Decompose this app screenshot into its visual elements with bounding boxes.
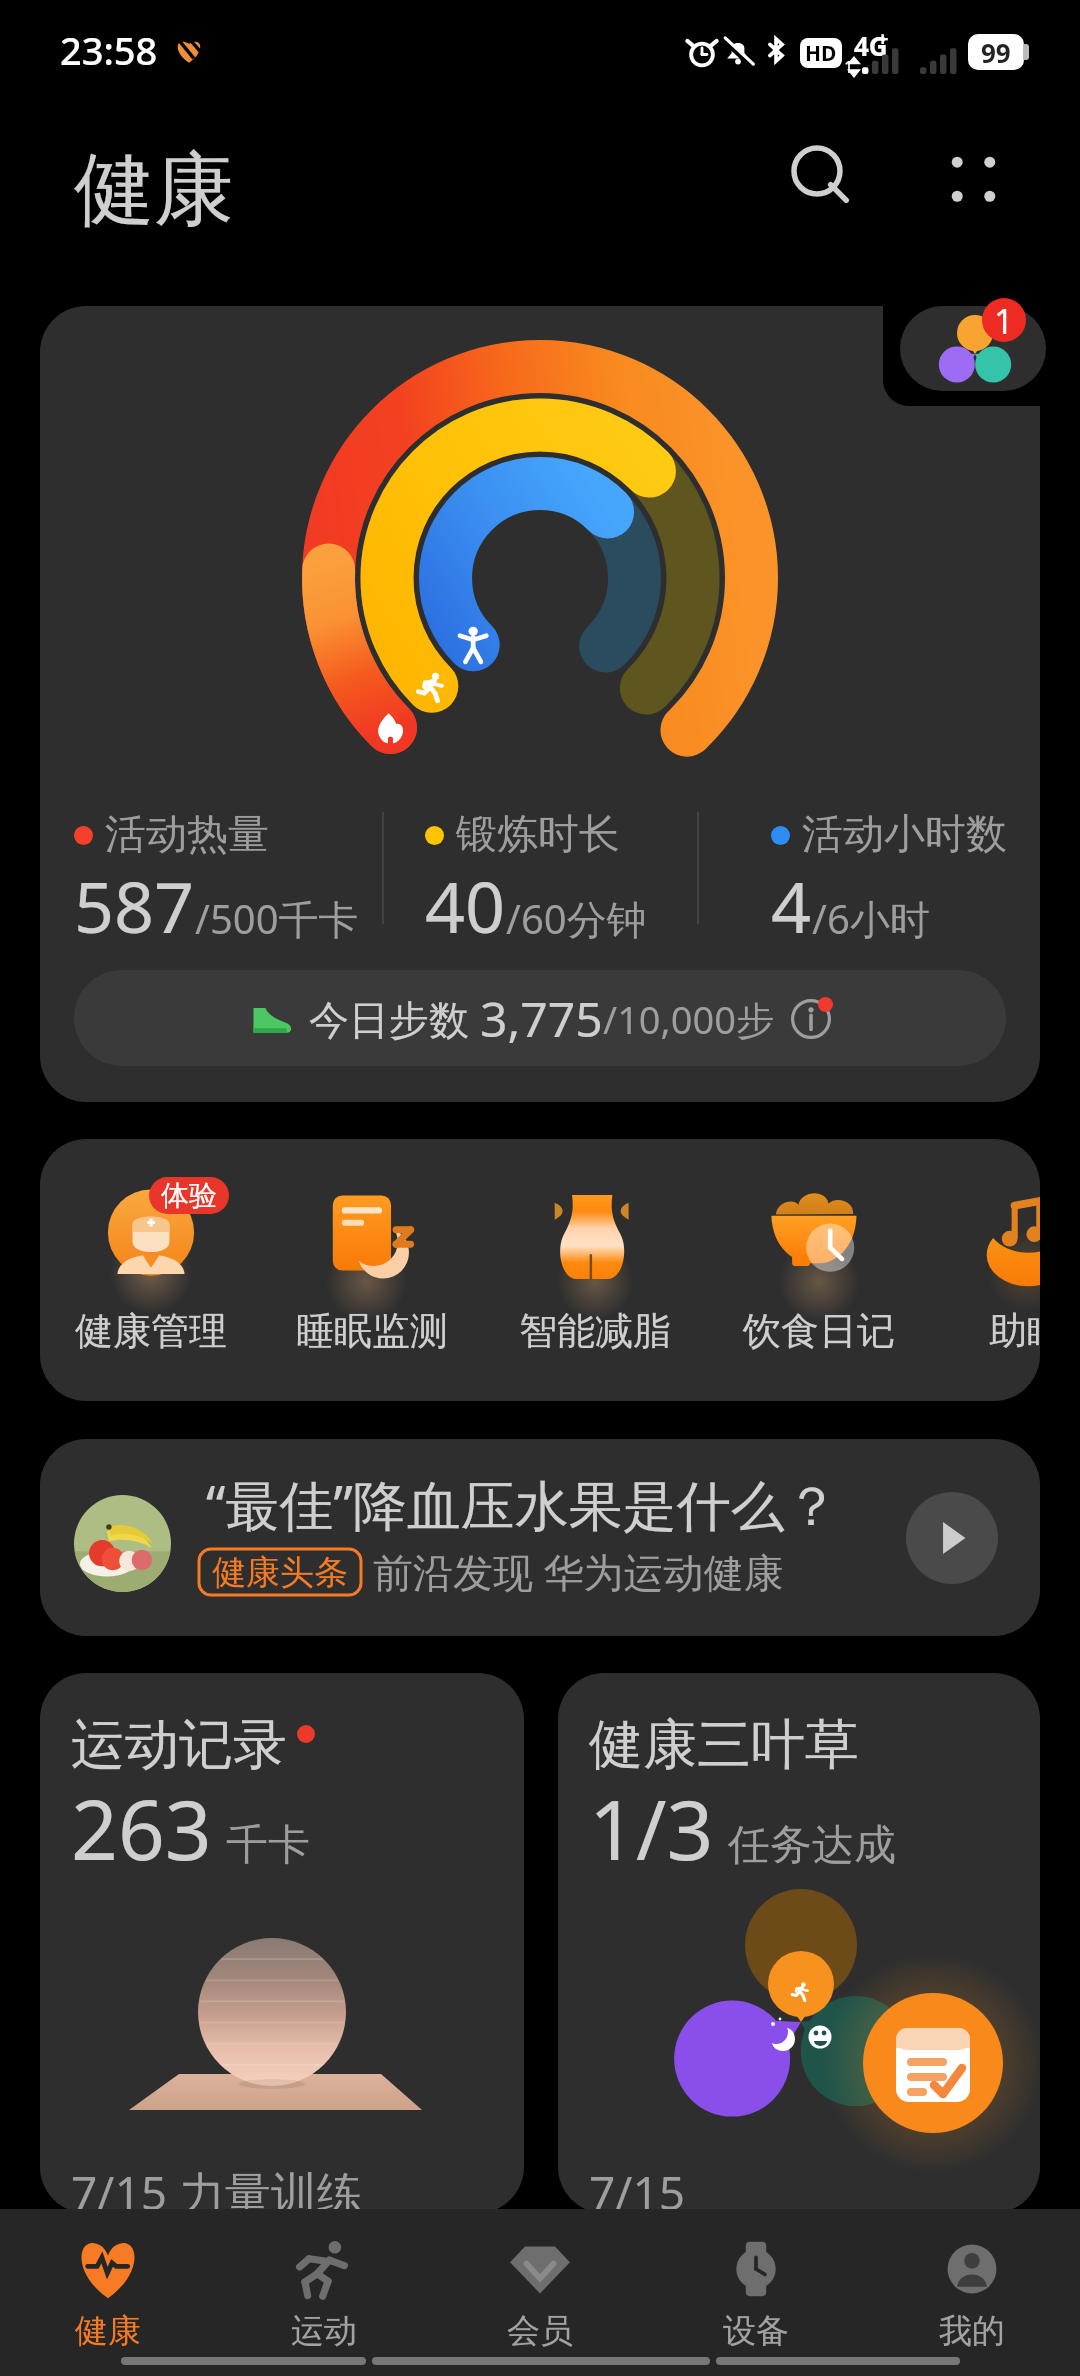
staticText: 活动小时数 bbox=[802, 809, 1007, 861]
staticText: 1/3 bbox=[589, 1772, 714, 1884]
staticText: 智能减脂 bbox=[519, 1307, 671, 1355]
staticText: 4G bbox=[854, 28, 888, 63]
staticText: 40 bbox=[425, 858, 506, 953]
staticText: 睡眠监测 bbox=[296, 1307, 448, 1355]
staticText: 23:58 bbox=[60, 24, 158, 76]
staticText: 健康三叶草 bbox=[589, 1711, 859, 1779]
staticText: 健康头条 bbox=[212, 1551, 348, 1594]
button[interactable]: Clover challenge bbox=[900, 306, 1046, 391]
staticText: 会员 bbox=[507, 2310, 573, 2352]
staticText: 千卡 bbox=[226, 1819, 310, 1872]
staticText: 饮食日记 bbox=[743, 1307, 895, 1355]
staticText: /6小时 bbox=[812, 891, 930, 946]
staticText: 263 bbox=[71, 1772, 212, 1884]
staticText: 7/15 bbox=[589, 2161, 686, 2213]
staticText: + bbox=[877, 25, 889, 52]
button[interactable]: Search bbox=[764, 118, 884, 238]
button[interactable]: Play bbox=[906, 1492, 998, 1584]
button[interactable]: 今日步数 bbox=[74, 970, 1006, 1066]
staticText: 体验 bbox=[161, 1178, 217, 1213]
staticText: /10,000步 bbox=[603, 993, 775, 1045]
staticText: 运动记录 bbox=[71, 1711, 287, 1779]
staticText: 今日步数 bbox=[309, 991, 480, 1046]
staticText: 健康管理 bbox=[75, 1307, 227, 1355]
staticText: 7/15 力量训练 bbox=[71, 2161, 364, 2213]
button[interactable]: 健康三叶草 bbox=[558, 1673, 1040, 2213]
button[interactable] bbox=[40, 306, 1040, 1102]
button[interactable]: 助眠 bbox=[916, 1139, 1040, 1401]
staticText: 587 bbox=[74, 858, 195, 953]
button[interactable]: 饮食日记 bbox=[708, 1139, 930, 1401]
staticText: 1 bbox=[844, 56, 854, 78]
staticText: 我的 bbox=[939, 2310, 1005, 2352]
button[interactable]: More options bbox=[912, 117, 1032, 237]
staticText: HD bbox=[805, 39, 837, 68]
staticText: 助眠 bbox=[989, 1307, 1040, 1355]
button[interactable]: 我的 bbox=[864, 2209, 1080, 2349]
staticText: 1 bbox=[994, 298, 1014, 342]
staticText: /500千卡 bbox=[195, 891, 359, 946]
button[interactable]: 体验 bbox=[40, 1139, 262, 1401]
staticText: 活动热量 bbox=[105, 809, 269, 861]
staticText: “最佳”降血压水果是什么？ bbox=[206, 1467, 839, 1541]
staticText: 4 bbox=[771, 858, 812, 953]
staticText: /60分钟 bbox=[506, 891, 647, 946]
staticText: 运动 bbox=[291, 2310, 357, 2352]
staticText: 3,775 bbox=[480, 986, 603, 1051]
staticText: 健康 bbox=[74, 140, 234, 241]
staticText: 前沿发现 华为运动健康 bbox=[373, 1544, 784, 1599]
staticText: 锻炼时长 bbox=[456, 809, 620, 861]
button[interactable]: 睡眠监测 bbox=[261, 1139, 483, 1401]
button[interactable]: 健康 bbox=[0, 2209, 216, 2349]
button[interactable]: 智能减脂 bbox=[484, 1139, 706, 1401]
button[interactable]: 设备 bbox=[648, 2209, 864, 2349]
button[interactable]: 会员 bbox=[432, 2209, 648, 2349]
staticText: 任务达成 bbox=[728, 1819, 896, 1872]
button[interactable]: “最佳”降血压水果是什么？ bbox=[40, 1439, 1040, 1636]
button[interactable]: 运动 bbox=[216, 2209, 432, 2349]
staticText: 健康 bbox=[75, 2310, 141, 2352]
staticText: 99 bbox=[981, 35, 1011, 70]
staticText: 设备 bbox=[723, 2310, 789, 2352]
button[interactable]: 运动记录 bbox=[40, 1673, 524, 2213]
